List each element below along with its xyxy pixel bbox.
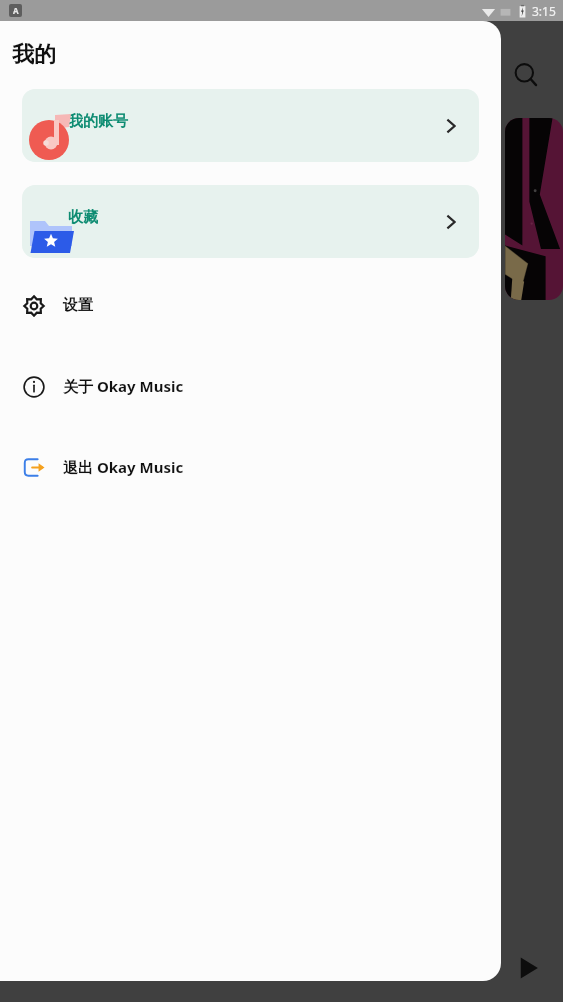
button[interactable]: 收藏 — [22, 185, 479, 258]
button[interactable]: Play — [504, 944, 552, 992]
button[interactable]: 退出 Okay Music — [0, 447, 501, 487]
staticText: 我的 — [12, 41, 56, 69]
staticText: 3:15 — [532, 3, 556, 19]
staticText: 我的账号 — [68, 112, 128, 131]
staticText: A — [13, 5, 19, 16]
button[interactable]: 关于 Okay Music — [0, 366, 501, 406]
button[interactable]: 设置 — [0, 285, 501, 325]
button[interactable] — [505, 118, 563, 300]
button[interactable]: Search — [508, 57, 544, 93]
button[interactable]: 我的账号 — [22, 89, 479, 162]
staticText: 关于 Okay Music — [63, 376, 184, 396]
staticText: 收藏 — [68, 208, 98, 227]
staticText: 退出 Okay Music — [63, 457, 184, 477]
staticText: 设置 — [63, 296, 93, 315]
